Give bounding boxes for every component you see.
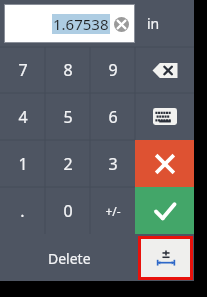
button[interactable]: Accept bbox=[135, 187, 194, 234]
staticText: 7 bbox=[18, 59, 28, 81]
staticText: 6 bbox=[108, 106, 118, 128]
staticText: 5 bbox=[63, 106, 73, 128]
staticText: 1.67538 bbox=[53, 14, 109, 34]
button[interactable]: 2 bbox=[45, 140, 90, 187]
button[interactable]: in bbox=[135, 0, 194, 47]
staticText: 1 bbox=[18, 153, 28, 175]
staticText: 0 bbox=[63, 200, 73, 222]
button[interactable]: Delete bbox=[0, 236, 138, 281]
button[interactable]: 3 bbox=[90, 140, 135, 187]
staticText: Delete bbox=[48, 249, 91, 268]
button[interactable]: Tolerance bbox=[141, 239, 190, 277]
staticText: . bbox=[20, 200, 25, 222]
staticText: 2 bbox=[63, 153, 73, 175]
button[interactable]: +/- bbox=[90, 187, 135, 234]
staticText: 4 bbox=[18, 106, 28, 128]
button[interactable]: 1 bbox=[0, 140, 45, 187]
button[interactable]: Clear bbox=[114, 17, 129, 32]
button[interactable]: 6 bbox=[90, 93, 135, 140]
staticText: +/- bbox=[105, 203, 121, 219]
button[interactable]: 8 bbox=[45, 47, 90, 93]
button[interactable]: Cancel bbox=[135, 140, 194, 187]
button[interactable]: . bbox=[0, 187, 45, 234]
button[interactable]: 9 bbox=[90, 47, 135, 93]
staticText: 9 bbox=[108, 59, 118, 81]
button[interactable]: 0 bbox=[45, 187, 90, 234]
staticText: 3 bbox=[108, 153, 118, 175]
staticText: 8 bbox=[63, 59, 73, 81]
button[interactable]: 4 bbox=[0, 93, 45, 140]
button[interactable]: Keyboard bbox=[135, 93, 194, 140]
button[interactable]: 7 bbox=[0, 47, 45, 93]
staticText: in bbox=[147, 14, 160, 33]
button[interactable]: 1.67538 bbox=[4, 4, 135, 43]
button[interactable]: Backspace bbox=[135, 47, 194, 93]
button[interactable]: 5 bbox=[45, 93, 90, 140]
